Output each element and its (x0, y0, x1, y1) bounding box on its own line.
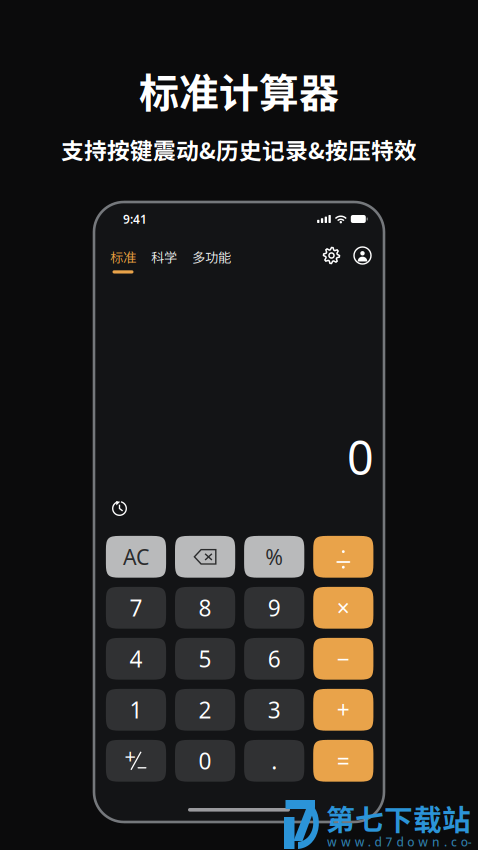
staticText: 支持按键震动&历史记录&按压特效 (61, 133, 417, 166)
button[interactable]: 账户 (340, 247, 371, 264)
button[interactable]: 历史记录 (111, 500, 128, 517)
button[interactable]: AC (106, 536, 166, 578)
button[interactable]: 1 (106, 689, 166, 731)
staticText: 3 (268, 695, 281, 725)
staticText: 9:41 (123, 211, 147, 227)
staticText: www.d7down.com (327, 834, 478, 850)
staticText: AC (123, 543, 149, 571)
button[interactable]: 4 (106, 638, 166, 680)
button[interactable]: 7 (106, 587, 166, 629)
button[interactable]: . (244, 740, 304, 782)
staticText: 9 (268, 593, 281, 623)
staticText: % (265, 543, 283, 571)
button[interactable]: 6 (244, 638, 304, 680)
staticText: − (337, 644, 350, 674)
staticText: + (337, 695, 350, 725)
button[interactable]: 除 (313, 536, 373, 578)
button[interactable]: 5 (175, 638, 235, 680)
staticText: 2 (199, 695, 212, 725)
staticText: 标准 (110, 247, 136, 266)
staticText: 7 (129, 593, 142, 623)
button[interactable]: 8 (175, 587, 235, 629)
staticText: 标准计算器 (139, 61, 339, 119)
staticText: 8 (199, 593, 212, 623)
staticText: 科学 (151, 247, 177, 266)
staticText: + (124, 742, 135, 769)
button[interactable]: − (313, 638, 373, 680)
button[interactable]: 设置 (323, 247, 340, 264)
button[interactable]: 科学 (136, 247, 177, 266)
button[interactable]: 正负号 (106, 740, 166, 782)
button[interactable]: 多功能 (177, 247, 231, 266)
button[interactable]: × (313, 587, 373, 629)
button[interactable]: 2 (175, 689, 235, 731)
button[interactable]: + (313, 689, 373, 731)
staticText: 1 (129, 695, 142, 725)
staticText: . (271, 746, 277, 776)
staticText: 6 (268, 644, 281, 674)
button[interactable]: 0 (175, 740, 235, 782)
button[interactable]: = (313, 740, 373, 782)
staticText: 0 (347, 426, 374, 488)
button[interactable]: % (244, 536, 304, 578)
staticText: × (337, 593, 350, 623)
staticText: 5 (199, 644, 212, 674)
button[interactable]: 标准 (110, 247, 136, 273)
staticText: 0 (199, 746, 212, 776)
button[interactable]: 3 (244, 689, 304, 731)
staticText: = (337, 746, 350, 776)
staticText: 第七下载站 (326, 797, 471, 838)
staticText: 4 (129, 644, 142, 674)
staticText: 多功能 (192, 247, 231, 266)
button[interactable]: 9 (244, 587, 304, 629)
button[interactable]: 退格 (175, 536, 235, 578)
